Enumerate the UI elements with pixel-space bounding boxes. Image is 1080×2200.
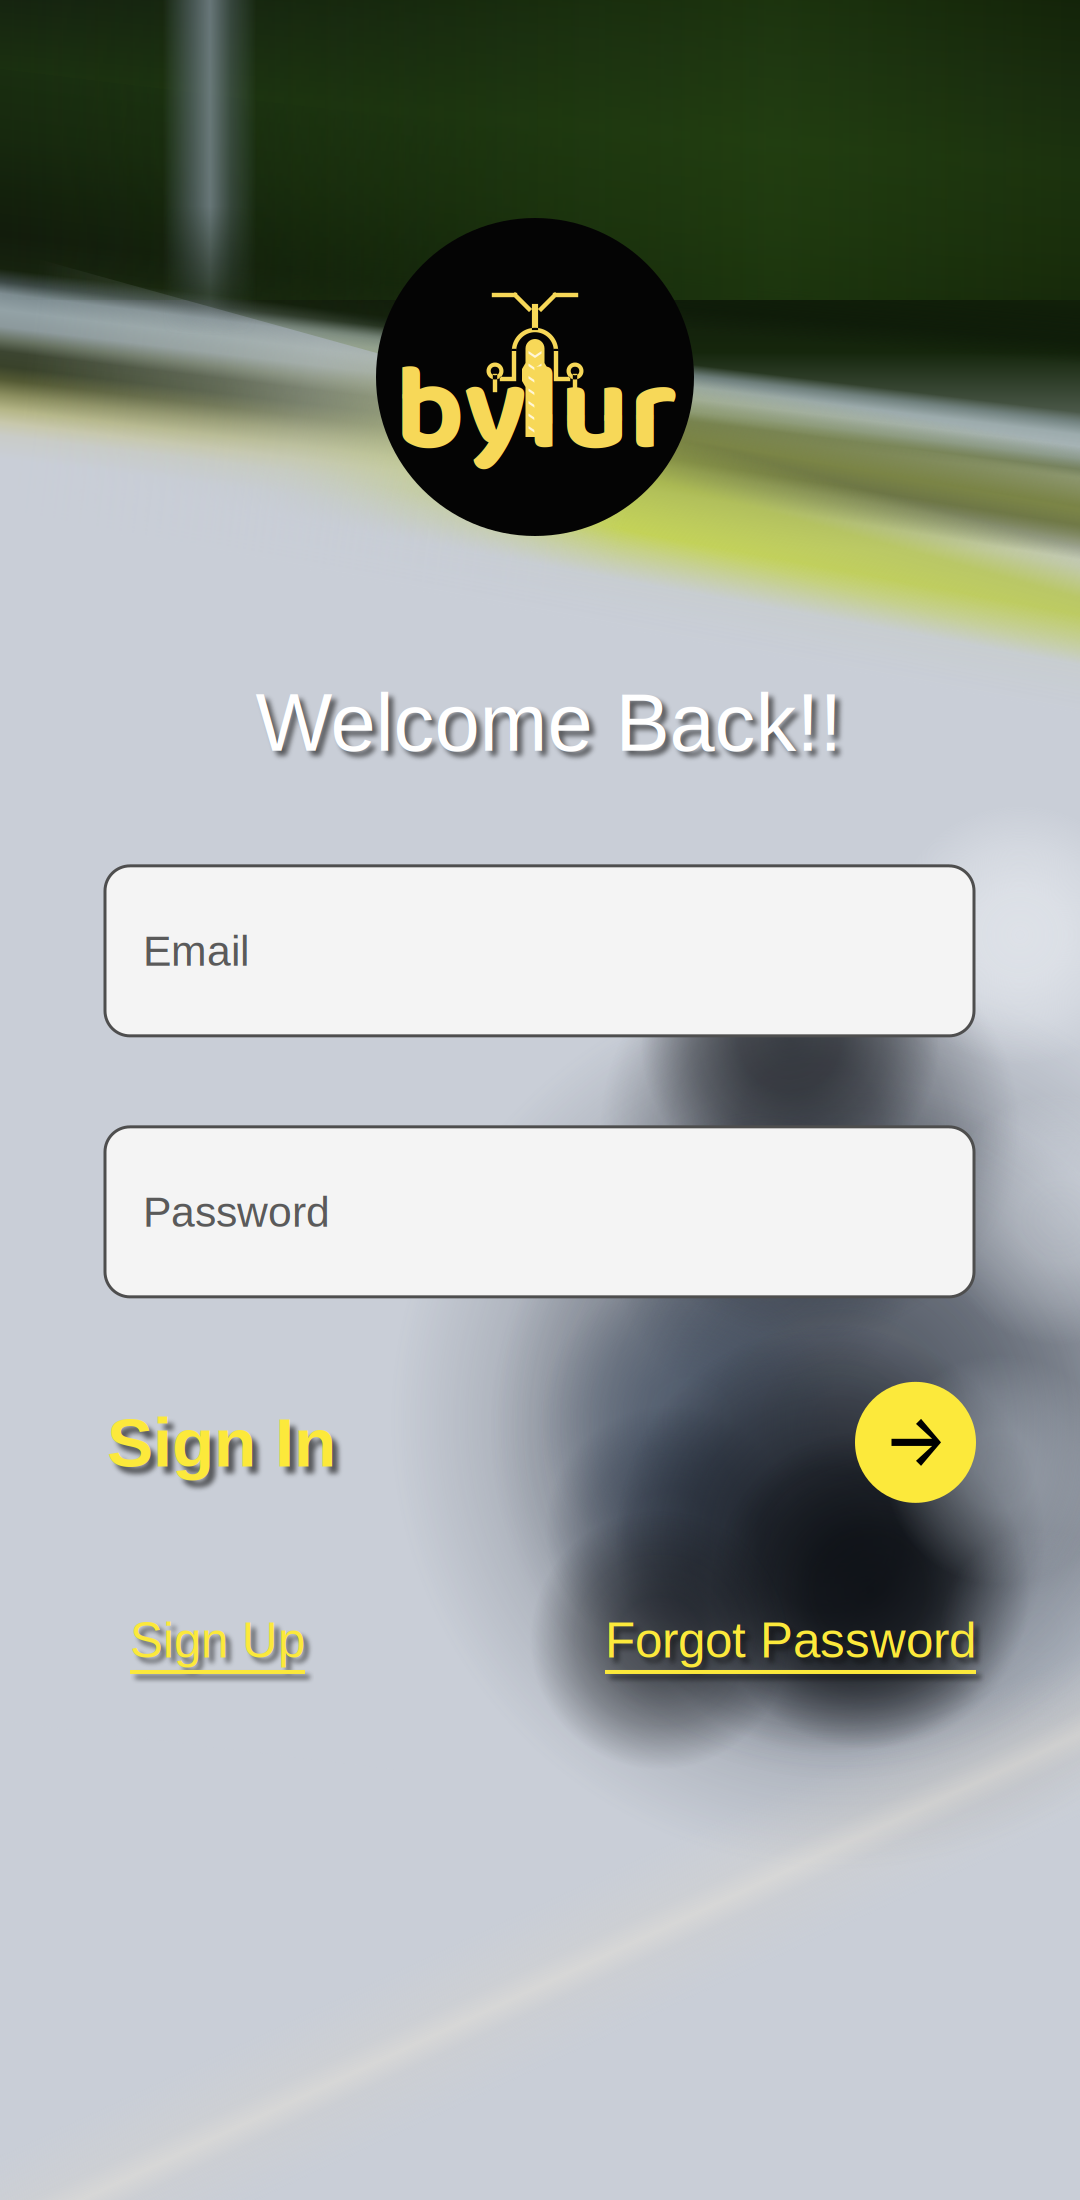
staticText: Sign In xyxy=(107,1404,336,1481)
button[interactable]: Sign in xyxy=(855,1382,976,1503)
staticText: Password xyxy=(143,1188,330,1236)
button[interactable]: Forgot Password xyxy=(605,1613,976,1674)
staticText: Welcome Back!! xyxy=(255,677,842,768)
button[interactable]: Sign Up xyxy=(130,1613,305,1674)
staticText: Forgot Password xyxy=(605,1613,976,1668)
staticText: Sign Up xyxy=(130,1613,305,1668)
staticText: bylur xyxy=(395,317,677,509)
button[interactable]: Sign In xyxy=(107,1404,336,1481)
staticText: Email xyxy=(143,927,249,975)
